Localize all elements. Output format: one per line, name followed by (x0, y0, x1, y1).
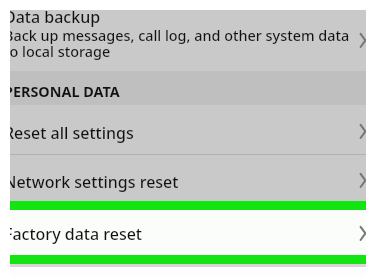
staticText: Network settings reset (10, 171, 179, 193)
staticText: Data backup (10, 10, 101, 28)
button[interactable]: Network settings reset (10, 155, 366, 201)
staticText: Back up messages, call log, and other sy… (10, 26, 350, 46)
staticText: PERSONAL DATA (10, 82, 120, 102)
staticText: to local storage (10, 42, 111, 62)
staticText: Factory data reset (10, 223, 142, 245)
button[interactable]: Factory data reset (10, 210, 366, 255)
button[interactable]: Data backup (10, 10, 366, 71)
button[interactable]: Reset all settings (10, 105, 366, 154)
staticText: Reset all settings (10, 122, 134, 144)
